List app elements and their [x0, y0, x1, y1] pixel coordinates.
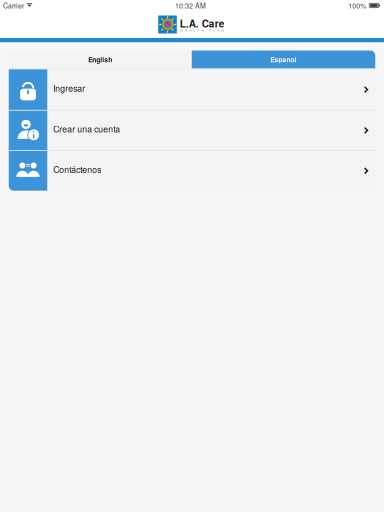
button[interactable]: Crear una cuenta — [9, 111, 375, 150]
staticText: Contáctenos — [53, 163, 101, 175]
staticText: Ingresar — [53, 82, 85, 94]
staticText: 100% — [348, 0, 366, 10]
staticText: L.A. Care — [180, 16, 225, 31]
staticText: English — [88, 55, 112, 64]
staticText: Espanol — [270, 55, 296, 64]
button[interactable]: English — [9, 50, 192, 68]
staticText: 10:32 AM — [175, 0, 206, 10]
staticText: HEALTH PLAN — [180, 28, 224, 33]
button[interactable]: Ingresar — [9, 69, 375, 110]
staticText: Carrier — [3, 0, 24, 10]
button[interactable]: Espanol — [192, 50, 375, 68]
staticText: Crear una cuenta — [53, 123, 120, 135]
button[interactable]: Contáctenos — [9, 151, 375, 191]
